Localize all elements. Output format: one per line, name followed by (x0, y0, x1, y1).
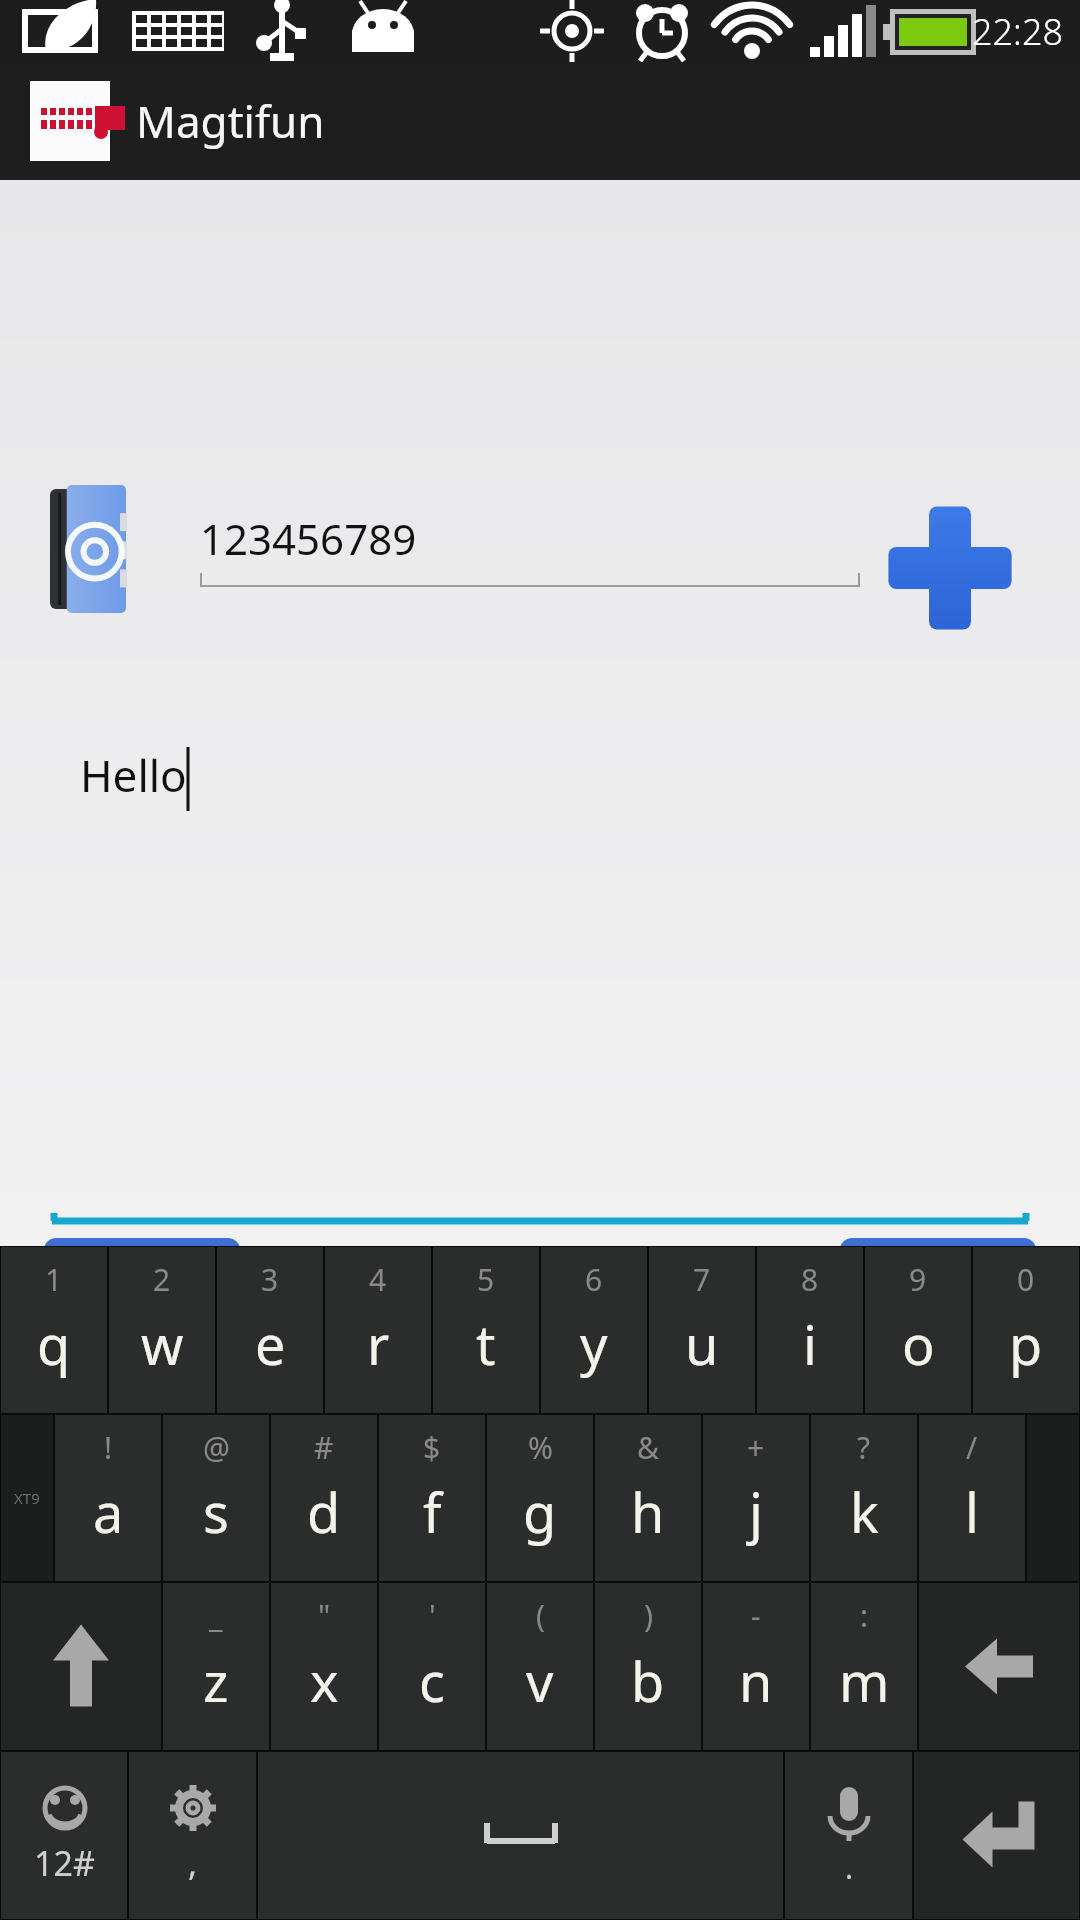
staticText: h (631, 1475, 665, 1549)
button[interactable]: 7 (649, 1247, 755, 1413)
staticText: _ (209, 1595, 223, 1636)
button[interactable]: 5 (433, 1247, 539, 1413)
staticText: k (850, 1475, 879, 1549)
button[interactable]: 8 (757, 1247, 863, 1413)
staticText: $ (423, 1427, 441, 1468)
staticText: , (188, 1840, 198, 1886)
staticText: Settings (862, 1272, 1015, 1326)
button[interactable]: Send (44, 1238, 240, 1360)
staticText: b (631, 1644, 665, 1718)
staticText: & (637, 1427, 659, 1468)
button[interactable]: ' (379, 1583, 485, 1750)
button[interactable]: 123456789 (200, 510, 860, 588)
button[interactable]: / (919, 1415, 1025, 1581)
button[interactable]: _ (163, 1583, 269, 1750)
staticText: 7 (693, 1259, 711, 1300)
button[interactable]: Shift (1, 1583, 161, 1750)
button[interactable]: 6 (541, 1247, 647, 1413)
button[interactable]: Keyboard settings (129, 1752, 256, 1919)
staticText: Magtifun (136, 91, 325, 151)
staticText: 3 (261, 1259, 279, 1300)
button[interactable]: ! (55, 1415, 161, 1581)
staticText: . (845, 1847, 854, 1888)
button[interactable]: : (811, 1583, 917, 1750)
staticText: l (965, 1475, 979, 1549)
button[interactable]: 1 (1, 1247, 107, 1413)
staticText: i (803, 1307, 817, 1381)
staticText: t (476, 1307, 496, 1381)
button[interactable]: 12# (1, 1752, 127, 1919)
staticText: % (528, 1427, 553, 1468)
button[interactable]: @ (163, 1415, 269, 1581)
button[interactable]: & (595, 1415, 701, 1581)
button[interactable]: Settings (840, 1238, 1036, 1360)
staticText: f (423, 1475, 442, 1549)
button[interactable]: ( (487, 1583, 593, 1750)
button[interactable]: % (487, 1415, 593, 1581)
button[interactable]: Enter (914, 1752, 1079, 1919)
button[interactable]: 0 (973, 1247, 1079, 1413)
staticText: Hello (80, 745, 187, 805)
staticText: 4 (369, 1259, 387, 1300)
button[interactable]: # (271, 1415, 377, 1581)
staticText: # (314, 1427, 334, 1468)
staticText: x (310, 1644, 339, 1718)
staticText: e (255, 1307, 286, 1381)
staticText: s (203, 1475, 229, 1549)
staticText: 2 (153, 1259, 171, 1300)
staticText: 9 (909, 1259, 927, 1300)
staticText: 5 (477, 1259, 495, 1300)
button[interactable]: Space (258, 1752, 783, 1919)
staticText: v (526, 1644, 554, 1718)
staticText: / (966, 1427, 978, 1468)
button[interactable]: " (271, 1583, 377, 1750)
staticText: p (1009, 1307, 1043, 1381)
staticText: @ (203, 1427, 230, 1468)
staticText: 1 (45, 1259, 63, 1300)
staticText: c (419, 1644, 445, 1718)
button[interactable]: Backspace (919, 1583, 1079, 1750)
staticText: - (751, 1595, 761, 1636)
button[interactable]: 3 (217, 1247, 323, 1413)
staticText: 0 (1017, 1259, 1035, 1300)
button[interactable]: ? (811, 1415, 917, 1581)
staticText: r (367, 1307, 390, 1381)
button[interactable]: Pick contact (48, 485, 126, 613)
staticText: : (860, 1595, 869, 1636)
staticText: w (141, 1307, 184, 1381)
staticText: XT9 (14, 1488, 40, 1508)
button[interactable]: 4 (325, 1247, 431, 1413)
staticText: + (747, 1427, 765, 1468)
staticText: ) (644, 1595, 653, 1636)
staticText: y (580, 1307, 608, 1381)
staticText: z (203, 1644, 229, 1718)
staticText: u (685, 1307, 719, 1381)
staticText: n (739, 1644, 773, 1718)
staticText: 8 (801, 1259, 819, 1300)
button[interactable]: + (703, 1415, 809, 1581)
button[interactable]: - (703, 1583, 809, 1750)
staticText: ! (104, 1427, 113, 1468)
staticText: " (318, 1595, 331, 1636)
button[interactable]: 2 (109, 1247, 215, 1413)
staticText: d (307, 1475, 341, 1549)
staticText: ' (429, 1595, 436, 1636)
button[interactable]: $ (379, 1415, 485, 1581)
staticText: 6 (585, 1259, 603, 1300)
button[interactable]: Voice input (785, 1752, 912, 1919)
staticText: o (902, 1307, 935, 1381)
staticText: g (523, 1475, 557, 1549)
button[interactable]: 9 (865, 1247, 971, 1413)
button[interactable]: Hello (80, 745, 960, 1175)
staticText: 22:28 (972, 7, 1064, 56)
staticText: m (839, 1644, 890, 1718)
staticText: q (37, 1307, 71, 1381)
staticText: 123456789 (200, 510, 417, 567)
staticText: 12# (34, 1840, 95, 1886)
staticText: j (749, 1475, 763, 1549)
button[interactable]: ) (595, 1583, 701, 1750)
staticText: ( (536, 1595, 545, 1636)
staticText: ? (857, 1427, 871, 1468)
staticText: a (93, 1475, 124, 1549)
button[interactable]: Add recipient (880, 498, 1020, 638)
